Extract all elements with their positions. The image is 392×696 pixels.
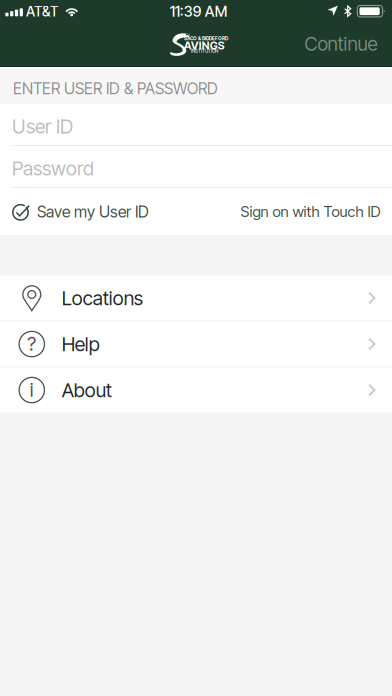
staticText: 11:39 AM xyxy=(170,3,228,20)
button[interactable]: ? xyxy=(0,321,392,367)
staticText: SACO & BIDDEFORD xyxy=(184,36,228,41)
button[interactable]: Save my User ID xyxy=(0,188,155,235)
staticText: About xyxy=(62,378,112,402)
staticText: Locations xyxy=(62,286,143,310)
staticText: Sign on with Touch ID xyxy=(240,203,380,221)
staticText: i xyxy=(30,378,34,401)
button[interactable]: Locations xyxy=(0,275,392,321)
staticText: ENTER USER ID & PASSWORD xyxy=(13,79,218,98)
staticText: Save my User ID xyxy=(37,202,149,221)
staticText: Password xyxy=(12,157,94,180)
staticText: Help xyxy=(62,332,100,356)
button[interactable]: i xyxy=(0,367,392,413)
staticText: Continue xyxy=(304,32,377,55)
button[interactable]: Sign on with Touch ID xyxy=(234,188,392,235)
staticText: AVINGS xyxy=(184,39,225,52)
button[interactable]: Continue xyxy=(290,20,392,66)
staticText: User ID xyxy=(12,115,73,138)
staticText: INSTITUTION xyxy=(191,48,218,54)
staticText: ? xyxy=(27,332,36,355)
staticText: AT&T xyxy=(26,3,58,20)
